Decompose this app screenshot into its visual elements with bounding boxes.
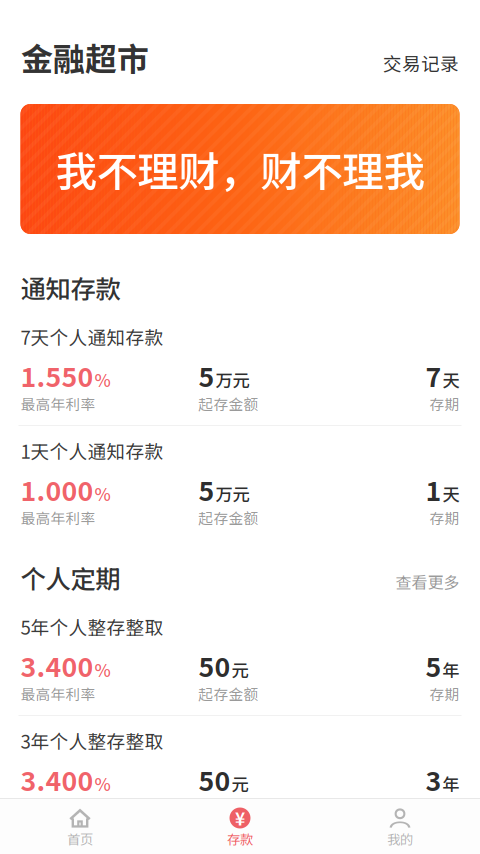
- staticText: 存期: [429, 393, 459, 414]
- button[interactable]: 我不理财，财不理我: [0, 104, 480, 234]
- staticText: %: [94, 481, 110, 506]
- button[interactable]: 我的: [320, 799, 480, 854]
- staticText: 5年个人整存整取: [20, 613, 163, 640]
- staticText: 查看更多: [395, 570, 459, 593]
- staticText: 50: [198, 646, 230, 685]
- staticText: 万元: [215, 367, 249, 392]
- staticText: 天: [442, 481, 459, 506]
- button[interactable]: 首页: [0, 799, 160, 854]
- staticText: 最高年利率: [20, 797, 95, 818]
- staticText: 交易记录: [383, 49, 459, 76]
- button[interactable]: 7天个人通知存款: [0, 323, 480, 407]
- staticText: 最高年利率: [20, 393, 95, 414]
- staticText: 元: [231, 657, 248, 682]
- staticText: 年: [442, 771, 459, 796]
- staticText: 起存金额: [198, 393, 258, 414]
- staticText: 通知存款: [20, 269, 120, 306]
- button[interactable]: 查看更多: [395, 570, 459, 593]
- staticText: 1.000: [20, 470, 93, 509]
- staticText: 存期: [429, 507, 459, 528]
- staticText: 存期: [429, 683, 459, 704]
- staticText: 起存金额: [198, 683, 258, 704]
- staticText: 7: [425, 356, 441, 395]
- staticText: 最高年利率: [20, 683, 95, 704]
- staticText: 1天个人通知存款: [20, 437, 163, 464]
- staticText: 5: [425, 646, 441, 685]
- staticText: 金融超市: [21, 34, 149, 80]
- staticText: 1.550: [20, 356, 93, 395]
- staticText: %: [94, 771, 110, 796]
- staticText: 起存金额: [198, 797, 258, 818]
- staticText: 3.400: [20, 760, 93, 799]
- button[interactable]: 5年个人整存整取: [0, 613, 480, 697]
- staticText: %: [94, 657, 110, 682]
- staticText: 起存金额: [198, 507, 258, 528]
- staticText: 我不理财，财不理我: [55, 139, 424, 199]
- staticText: ¥: [235, 805, 245, 831]
- staticText: 5: [198, 470, 214, 509]
- staticText: 3: [425, 760, 441, 799]
- staticText: 3年个人整存整取: [20, 727, 163, 754]
- staticText: %: [94, 367, 110, 392]
- staticText: 存款: [227, 829, 253, 848]
- staticText: 1: [425, 470, 441, 509]
- staticText: 元: [231, 771, 248, 796]
- staticText: 50: [198, 760, 230, 799]
- staticText: 首页: [67, 829, 93, 848]
- staticText: 个人定期: [20, 559, 120, 596]
- staticText: 存期: [429, 797, 459, 818]
- button[interactable]: 1天个人通知存款: [0, 437, 480, 521]
- staticText: 万元: [215, 481, 249, 506]
- button[interactable]: ¥: [160, 799, 320, 854]
- staticText: 3.400: [20, 646, 93, 685]
- staticText: 7天个人通知存款: [20, 323, 163, 350]
- staticText: 我的: [387, 829, 413, 848]
- staticText: 天: [442, 367, 459, 392]
- staticText: 年: [442, 657, 459, 682]
- button[interactable]: 3年个人整存整取: [0, 727, 480, 811]
- staticText: 最高年利率: [20, 507, 95, 528]
- button[interactable]: 交易记录: [383, 49, 459, 76]
- staticText: 5: [198, 356, 214, 395]
